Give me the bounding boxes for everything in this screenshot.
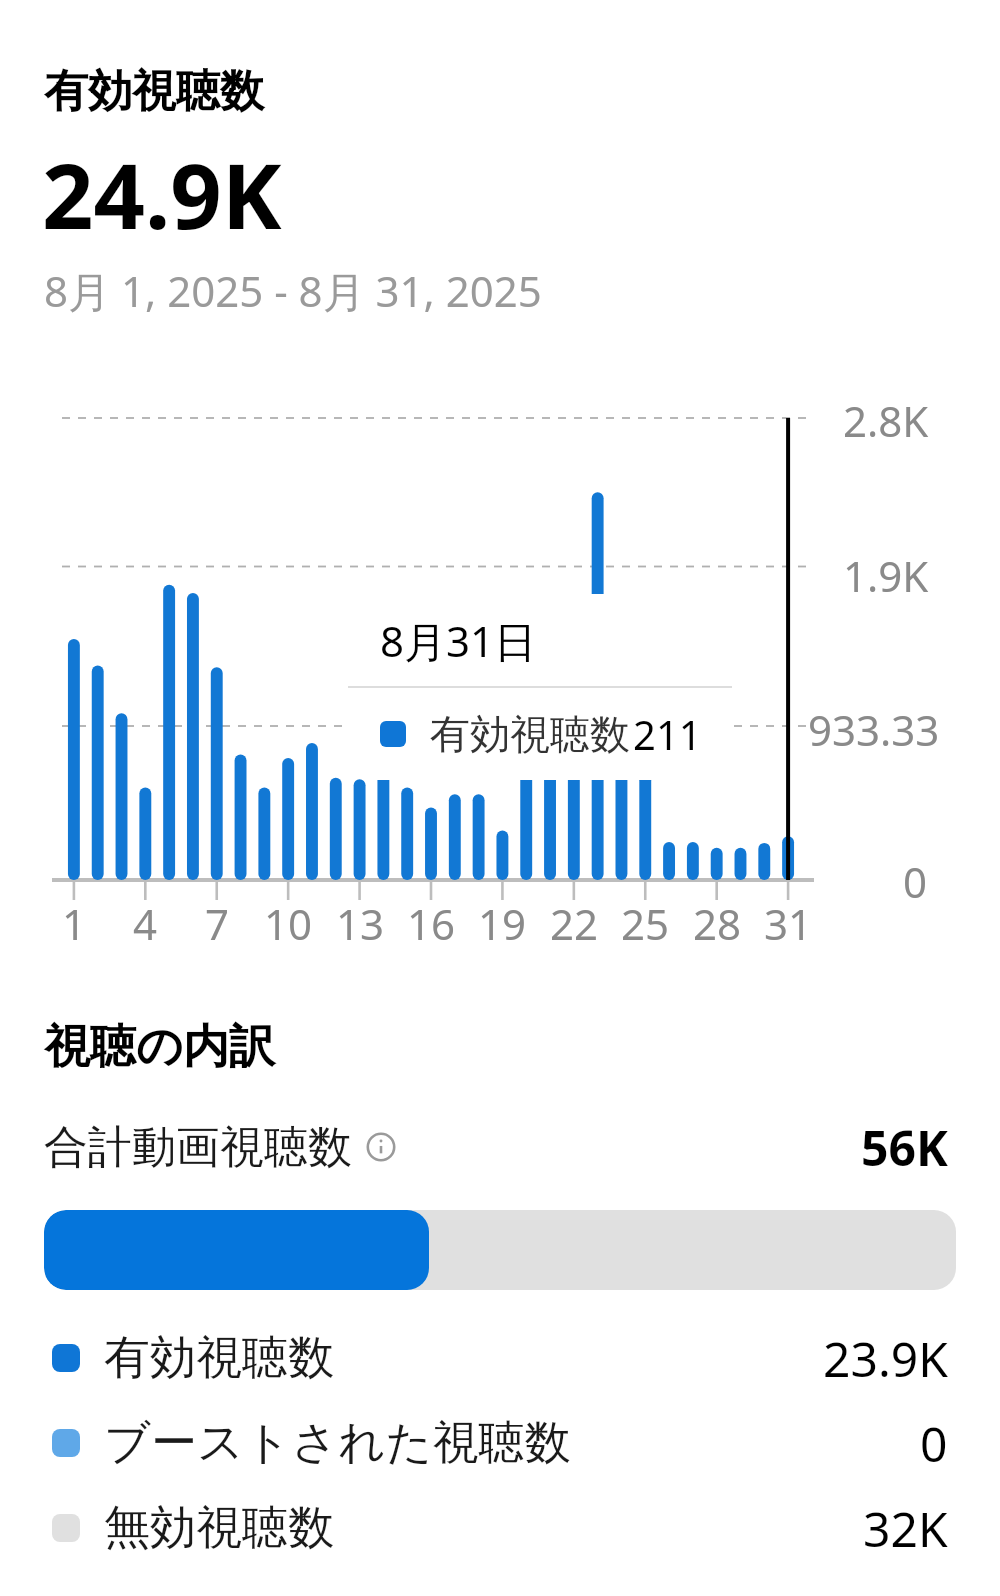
staticText: ブーストされた視聴数 (104, 1414, 571, 1472)
staticText: 1 (44, 895, 104, 952)
staticText: 有効視聴数 (44, 64, 264, 119)
button[interactable]: ブーストされた視聴数 (0, 1410, 1000, 1476)
staticText: 視聴の内訳 (44, 1018, 276, 1076)
staticText: 56K (861, 1115, 948, 1180)
staticText: 8月31日 (380, 612, 537, 669)
staticText: 32K (863, 1496, 948, 1561)
staticText: 有効視聴数 (104, 1329, 334, 1387)
staticText: 19 (472, 895, 532, 952)
button[interactable]: Info (366, 1132, 396, 1162)
staticText: 24.9K (42, 133, 282, 256)
staticText: 23.9K (823, 1326, 948, 1391)
staticText: 28 (687, 895, 747, 952)
staticText: 1.9K (843, 547, 929, 604)
staticText: 16 (401, 895, 461, 952)
staticText: 8月 1, 2025 - 8月 31, 2025 (44, 262, 542, 319)
staticText: 13 (330, 895, 390, 952)
staticText: 合計動画視聴数 (44, 1120, 352, 1175)
button[interactable]: 無効視聴数 (0, 1495, 1000, 1561)
button[interactable]: 有効視聴数 (0, 1325, 1000, 1391)
staticText: 無効視聴数 (104, 1499, 334, 1557)
staticText: 25 (615, 895, 675, 952)
staticText: 31 (758, 895, 818, 952)
button[interactable]: 合計動画視聴数 (0, 1112, 1000, 1182)
staticText: 7 (187, 895, 247, 952)
staticText: 933.33 (808, 701, 940, 758)
staticText: 4 (115, 895, 175, 952)
staticText: 22 (544, 895, 604, 952)
staticText: 有効視聴数 (430, 709, 630, 759)
button[interactable]: Daily qualified views bar chart (0, 390, 1000, 910)
staticText: 211 (633, 707, 702, 761)
staticText: 2.8K (843, 392, 929, 449)
staticText: 0 (903, 853, 928, 910)
staticText: 0 (920, 1411, 948, 1476)
button[interactable] (44, 1210, 956, 1290)
button[interactable]: 8月31日 (348, 594, 732, 780)
staticText: 10 (258, 895, 318, 952)
